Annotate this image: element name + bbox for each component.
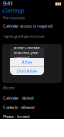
- staticText: Contacts · allowed: [3, 105, 34, 110]
- staticText: Allow: [22, 59, 32, 65]
- staticText: Calendar access is required: [3, 23, 52, 29]
- staticText: Don't Allow: [17, 68, 37, 74]
- staticText: Calendar · denied: [3, 95, 33, 100]
- button[interactable]: ‹: [0, 7, 64, 14]
- button[interactable]: Allow: [10, 58, 44, 66]
- staticText: Photos · limited: [3, 114, 29, 119]
- staticText: Tap to grant permission: [3, 34, 44, 39]
- staticText: ▮▮▮: [55, 1, 61, 6]
- staticText: Allow Calendar to access your contacts?: [13, 44, 40, 60]
- staticText: Recent: [3, 85, 14, 90]
- staticText: Settings: [5, 7, 25, 14]
- staticText: 9:41: [3, 0, 13, 7]
- staticText: Permissions: [3, 15, 25, 20]
- staticText: ‹: [2, 5, 4, 16]
- button[interactable]: Don't Allow: [10, 67, 44, 75]
